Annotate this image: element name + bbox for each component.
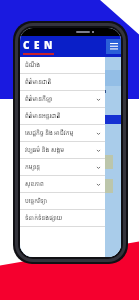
button[interactable]: ព័ត៌មានអន្តរជាតិ: [20, 108, 105, 125]
staticText: វប្បធម៌ និង សង្គម: [25, 146, 96, 154]
staticText: សុខភាព: [25, 180, 96, 188]
staticText: ព័ត៌មានកីឡា: [25, 95, 96, 103]
staticText: បច្ចេកវិទ្យា: [25, 197, 101, 205]
staticText: សេដ្ឋកិច្ច និង អាជីវកម្ម: [25, 129, 96, 137]
staticText: E: [34, 38, 40, 52]
button[interactable]: បច្ចេកវិទ្យា: [20, 193, 105, 210]
staticText: ព័ត៌មានជាតិ: [25, 78, 101, 86]
staticText: ព័ត៌មានអន្តរជាតិ: [25, 112, 101, 120]
button[interactable]: កម្សាន្ត: [20, 159, 105, 176]
button[interactable]: Open navigation menu: [106, 39, 121, 54]
button[interactable]: ទំនាក់ទំនងផ្សាយ: [20, 210, 105, 227]
button[interactable]: ព័ត៌មានកីឡា: [20, 91, 105, 108]
staticText: N: [44, 38, 53, 52]
button[interactable]: សុខភាព: [20, 176, 105, 193]
staticText: កម្សាន្ត: [25, 163, 96, 171]
button[interactable]: សេដ្ឋកិច្ច និង អាជីវកម្ម: [20, 125, 105, 142]
button[interactable]: វប្បធម៌ និង សង្គម: [20, 142, 105, 159]
staticText: C: [23, 38, 30, 52]
button[interactable]: ព័ត៌មានជាតិ: [20, 74, 105, 91]
button[interactable]: ដំណឹង: [20, 57, 105, 74]
staticText: ទំនាក់ទំនងផ្សាយ: [25, 214, 101, 222]
staticText: ដំណឹង: [25, 61, 101, 69]
